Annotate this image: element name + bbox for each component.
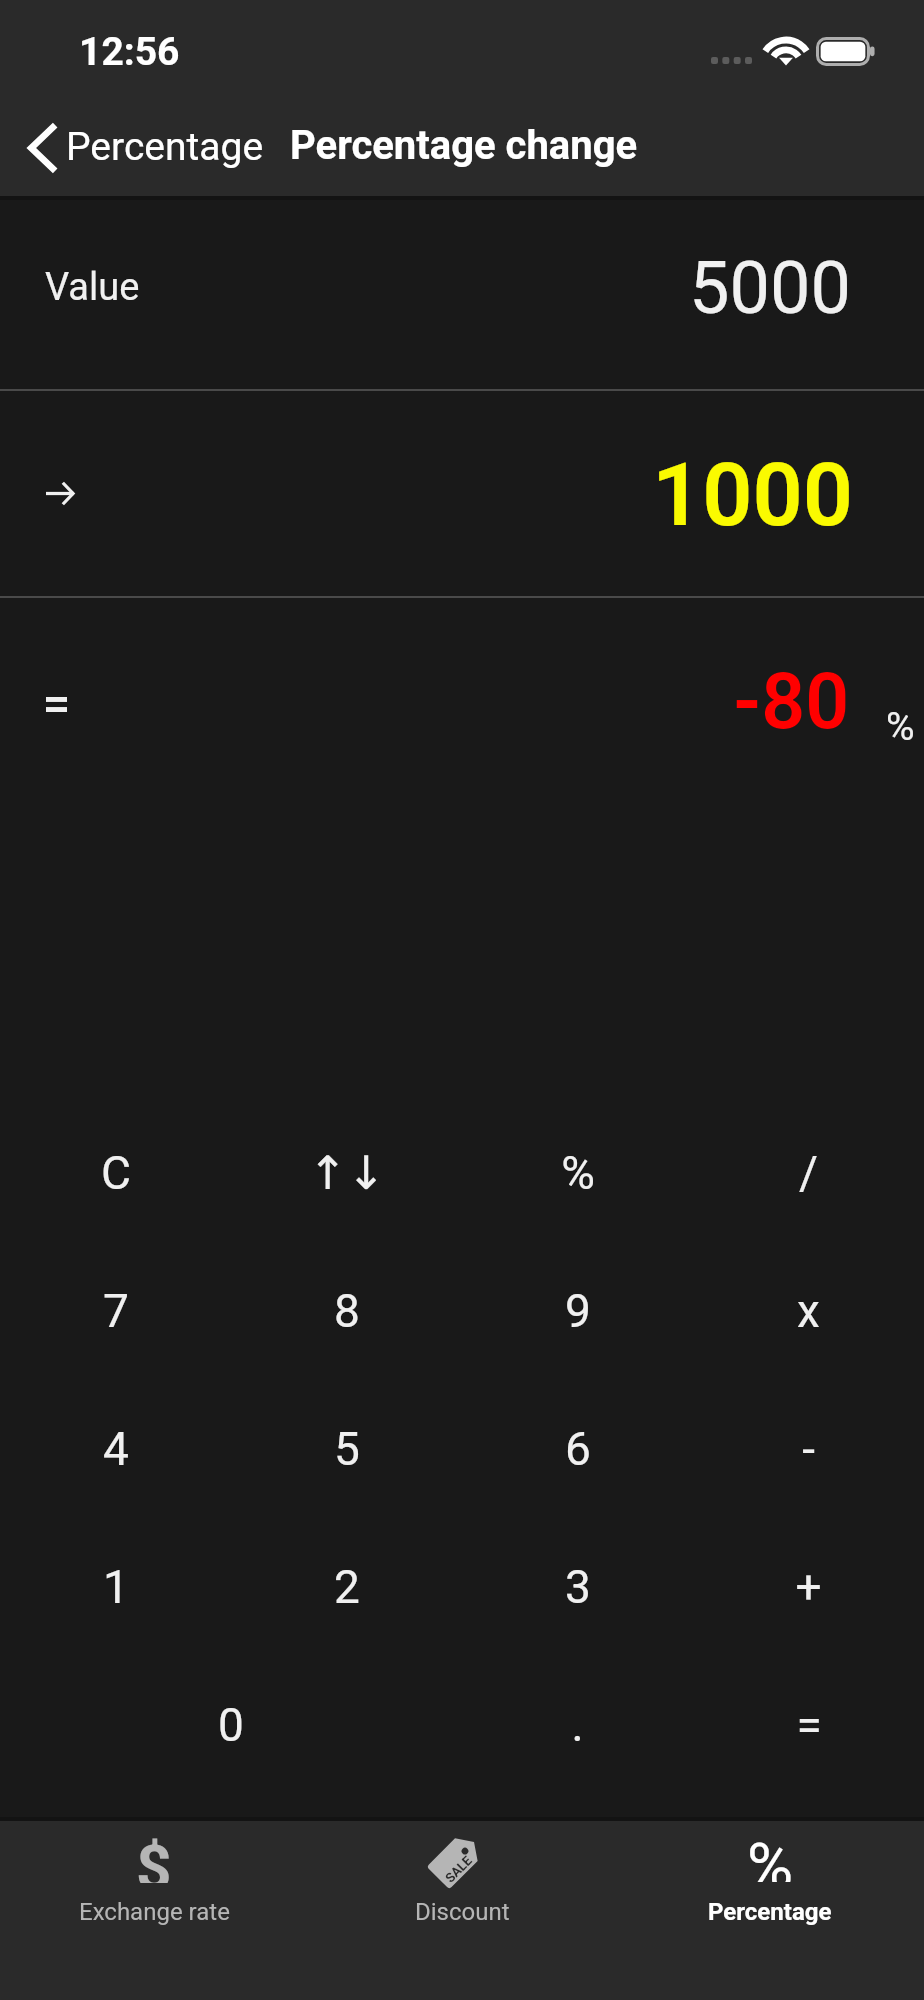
staticText: 4 [103, 1422, 129, 1476]
staticText: + [795, 1560, 822, 1614]
staticText: Percentage change [290, 122, 638, 169]
staticText: 0 [218, 1698, 244, 1752]
staticText: ↑↓ [308, 1146, 386, 1200]
button[interactable]: % [462, 1104, 693, 1242]
button[interactable]: 3 [462, 1518, 693, 1656]
button[interactable]: Discount [308, 1821, 616, 2000]
button[interactable]: = [693, 1656, 924, 1794]
staticText: 8 [334, 1284, 360, 1338]
staticText: / [799, 1146, 818, 1200]
button[interactable]: 2 [231, 1518, 462, 1656]
button[interactable]: / [693, 1104, 924, 1242]
staticText: Discount [415, 1898, 510, 1926]
button[interactable]: C [0, 1104, 231, 1242]
staticText: % [747, 1837, 794, 1889]
staticText: 6 [565, 1422, 591, 1476]
staticText: 12:56 [79, 29, 180, 75]
button[interactable]: 1 [0, 1518, 231, 1656]
button[interactable]: . [462, 1656, 693, 1794]
button[interactable]: Exchange rate [0, 1821, 308, 2000]
button[interactable]: 0 [0, 1656, 462, 1794]
button[interactable]: 4 [0, 1380, 231, 1518]
staticText: Percentage [708, 1898, 832, 1926]
staticText: Value [45, 265, 140, 310]
staticText: SALE [442, 1852, 475, 1886]
staticText: Percentage [66, 124, 264, 170]
button[interactable]: 5 [231, 1380, 462, 1518]
staticText: Exchange rate [79, 1898, 230, 1926]
staticText: % [886, 704, 915, 750]
staticText: 5000 [689, 246, 851, 330]
staticText: $ [136, 1837, 172, 1889]
staticText: 3 [565, 1560, 591, 1614]
other: Discount [430, 1834, 482, 1886]
button[interactable]: Percentage [616, 1821, 924, 2000]
staticText: -80 [733, 657, 850, 747]
staticText: . [571, 1698, 584, 1752]
button[interactable]: Back [27, 124, 264, 170]
button[interactable]: 1000 [0, 391, 924, 596]
staticText: 5 [334, 1422, 360, 1476]
staticText: 2 [334, 1560, 360, 1614]
staticText: C [101, 1146, 131, 1200]
button[interactable]: 8 [231, 1242, 462, 1380]
button[interactable]: - [693, 1380, 924, 1518]
button[interactable]: + [693, 1518, 924, 1656]
staticText: 9 [565, 1284, 591, 1338]
staticText: 1000 [652, 443, 854, 546]
other: Back [27, 125, 57, 171]
button[interactable]: 9 [462, 1242, 693, 1380]
button[interactable]: 6 [462, 1380, 693, 1518]
button[interactable]: 7 [0, 1242, 231, 1380]
staticText: x [797, 1284, 820, 1338]
staticText: 1 [103, 1560, 129, 1614]
staticText: % [561, 1146, 595, 1200]
staticText: = [796, 1698, 822, 1752]
staticText: - [802, 1422, 815, 1476]
button[interactable]: x [693, 1242, 924, 1380]
button[interactable]: ↑↓ [231, 1104, 462, 1242]
button[interactable]: Value [0, 200, 924, 389]
staticText: 7 [103, 1284, 129, 1338]
